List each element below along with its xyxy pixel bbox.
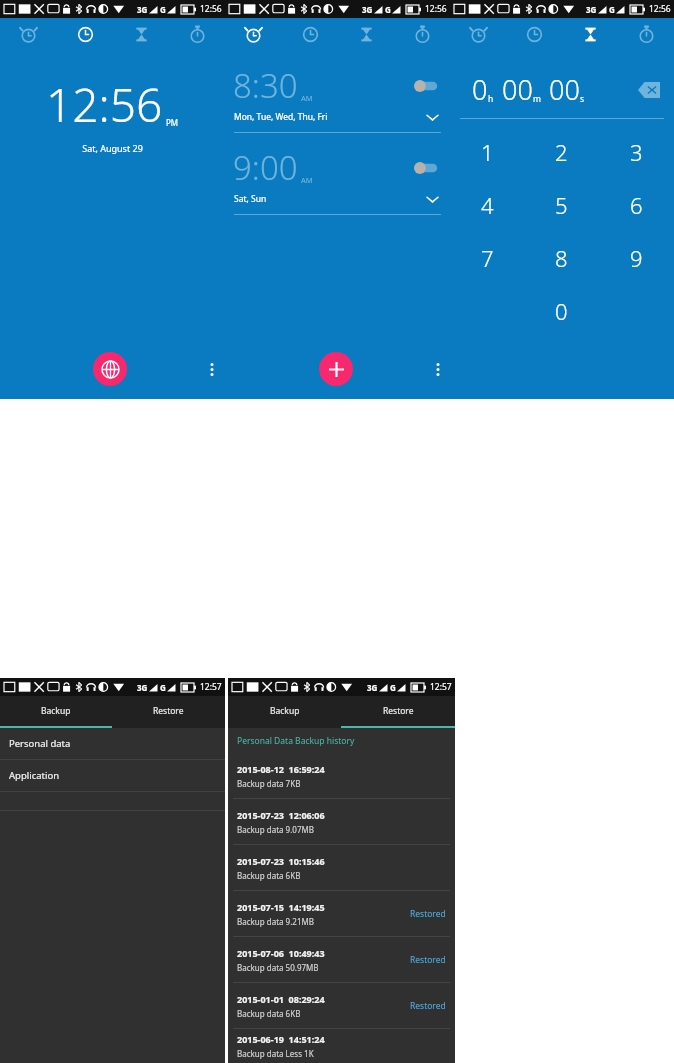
staticText: 2015-07-23 10:15:46	[237, 855, 325, 867]
button[interactable]: 8:30	[225, 63, 450, 133]
button[interactable]: 6	[599, 178, 674, 231]
button[interactable]: Timer	[338, 18, 394, 51]
staticText: 12:57	[430, 681, 452, 693]
staticText: Backup data 6KB	[237, 1008, 301, 1019]
button[interactable]: 2015-08-12 16:59:24	[228, 753, 455, 798]
button[interactable]: 2015-07-06 10:49:43	[228, 937, 455, 982]
staticText: Restored	[410, 1000, 446, 1012]
staticText: 2015-06-19 14:51:24	[237, 1033, 325, 1045]
staticText: 12:56	[46, 73, 163, 136]
button[interactable]: Backup	[0, 696, 112, 726]
staticText: 3G	[586, 4, 597, 15]
staticText: Backup data Less 1K	[237, 1048, 314, 1059]
staticText: G	[390, 682, 396, 693]
staticText: 2015-07-06 10:49:43	[237, 947, 325, 959]
button[interactable]: 1	[450, 125, 524, 178]
button[interactable]: Alarm	[450, 18, 506, 51]
staticText: 9	[630, 243, 643, 273]
button[interactable]: Toggle alarm	[414, 79, 440, 93]
button[interactable]: Application	[0, 760, 225, 791]
button[interactable]: 3	[599, 125, 674, 178]
button[interactable]: 2015-06-19 14:51:24	[228, 1029, 455, 1063]
staticText: Backup data 9.21MB	[237, 916, 314, 927]
staticText: 2015-07-23 12:06:06	[237, 809, 325, 821]
staticText: 00	[549, 71, 580, 108]
button[interactable]: Backup	[228, 696, 341, 726]
staticText: s	[580, 93, 585, 105]
staticText: AM	[301, 175, 313, 185]
button[interactable]: 2	[524, 125, 599, 178]
staticText: h	[488, 93, 494, 105]
button[interactable]: 9:00	[225, 145, 450, 215]
staticText: 1	[481, 137, 494, 167]
staticText: 2015-08-12 16:59:24	[237, 763, 325, 775]
button[interactable]: Stopwatch	[394, 18, 450, 51]
staticText: PM	[166, 117, 179, 128]
staticText: 4	[481, 190, 494, 220]
staticText: 3G	[137, 4, 148, 15]
staticText: 2015-07-15 14:19:45	[237, 901, 325, 913]
staticText: 12:56	[425, 3, 447, 15]
staticText: Personal Data Backup history	[237, 735, 355, 747]
button[interactable]: 2015-07-15 14:19:45	[228, 891, 455, 936]
staticText: Restored	[410, 954, 446, 966]
button[interactable]: 2015-01-01 08:29:24	[228, 983, 455, 1028]
staticText: 2	[555, 137, 568, 167]
button[interactable]: Stopwatch	[618, 18, 674, 51]
staticText: Backup data 50.97MB	[237, 962, 319, 973]
button[interactable]: 2015-07-23 10:15:46	[228, 845, 455, 890]
staticText: 0	[472, 71, 488, 108]
button[interactable]: World clock	[93, 352, 127, 386]
button[interactable]: 4	[450, 178, 524, 231]
staticText: Backup	[270, 705, 300, 717]
staticText: 3G	[362, 4, 373, 15]
staticText: Sat, August 29	[0, 142, 225, 154]
button[interactable]: Delete	[638, 82, 660, 98]
staticText: Restored	[410, 908, 446, 920]
button[interactable]: More options	[425, 354, 450, 384]
button[interactable]: 7	[450, 231, 524, 284]
button[interactable]: 9	[599, 231, 674, 284]
button[interactable]: Restore	[112, 696, 225, 726]
button[interactable]: Restore	[341, 696, 455, 726]
staticText: 12:56	[649, 3, 671, 15]
button[interactable]: More options	[198, 354, 225, 384]
button[interactable]: Timer	[113, 18, 169, 51]
button[interactable]: 5	[524, 178, 599, 231]
staticText: Backup data 9.07MB	[237, 824, 314, 835]
staticText: 3	[630, 137, 643, 167]
staticText: Restore	[383, 705, 414, 717]
button[interactable]: Alarm	[0, 18, 57, 51]
staticText: Sat, Sun	[234, 193, 267, 205]
staticText: G	[385, 4, 391, 15]
button[interactable]: Alarm	[225, 18, 282, 51]
staticText: 6	[630, 190, 643, 220]
button[interactable]: Stopwatch	[169, 18, 225, 51]
button[interactable]: Clock	[57, 18, 113, 51]
button[interactable]: 8	[524, 231, 599, 284]
staticText: Application	[9, 769, 60, 782]
staticText: 3G	[137, 682, 148, 693]
button[interactable]: Personal data	[0, 728, 225, 759]
staticText: Mon, Tue, Wed, Thu, Fri	[234, 111, 328, 123]
staticText: 3G	[367, 682, 378, 693]
staticText: 8:30	[233, 63, 298, 108]
button[interactable]: Add alarm	[319, 352, 353, 386]
staticText: 7	[481, 243, 494, 273]
button[interactable]: Clock	[282, 18, 338, 51]
staticText: 8	[555, 243, 568, 273]
button[interactable]: 2015-07-23 12:06:06	[228, 799, 455, 844]
staticText: Backup data 7KB	[237, 778, 301, 789]
button[interactable]: 0	[524, 284, 599, 337]
button[interactable]: Timer	[562, 18, 618, 51]
staticText: 2015-01-01 08:29:24	[237, 993, 325, 1005]
staticText: m	[533, 93, 541, 105]
staticText: AM	[301, 93, 313, 103]
button[interactable]: Clock	[506, 18, 562, 51]
staticText: Personal data	[9, 737, 71, 750]
button[interactable]: Toggle alarm	[414, 161, 440, 175]
staticText: 5	[555, 190, 568, 220]
staticText: Restore	[153, 705, 184, 717]
